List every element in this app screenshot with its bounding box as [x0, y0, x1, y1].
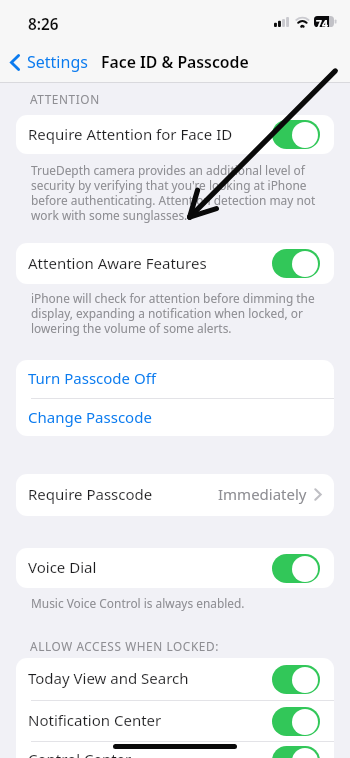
button[interactable]: Voice Dial	[272, 554, 320, 583]
button[interactable]: Turn Passcode Off	[16, 360, 334, 398]
staticText: Require Passcode	[28, 484, 153, 504]
button[interactable]: Control Center	[272, 746, 320, 758]
button[interactable]: Today View and Search	[16, 658, 334, 700]
button[interactable]: Attention Aware Features	[16, 243, 334, 284]
staticText: ALLOW ACCESS WHEN LOCKED:	[30, 638, 219, 654]
button[interactable]: Notification Center	[16, 701, 334, 741]
staticText: Today View and Search	[28, 668, 189, 688]
staticText: Face ID & Passcode	[101, 51, 249, 73]
button[interactable]: Notification Center	[272, 707, 320, 736]
button[interactable]: Settings	[0, 47, 98, 77]
staticText: Voice Dial	[28, 557, 97, 577]
staticText: Immediately	[218, 484, 307, 504]
button[interactable]: Attention Aware Features	[272, 249, 320, 278]
button[interactable]: Require Passcode	[16, 474, 334, 516]
staticText: Change Passcode	[28, 407, 152, 427]
button[interactable]: Today View and Search	[272, 665, 320, 694]
staticText: ATTENTION	[30, 91, 100, 107]
button[interactable]: Voice Dial	[16, 548, 334, 588]
button[interactable]: Require Attention for Face ID	[16, 115, 334, 154]
staticText: Control Center	[28, 749, 132, 758]
staticText: 74	[316, 17, 328, 31]
staticText: Settings	[27, 51, 88, 73]
staticText: Turn Passcode Off	[28, 368, 156, 388]
staticText: 8:26	[28, 14, 59, 35]
button[interactable]: Change Passcode	[16, 399, 334, 436]
staticText: iPhone will check for attention before d…	[31, 290, 323, 336]
staticText: Attention Aware Features	[28, 253, 207, 273]
button[interactable]: Control Center	[16, 742, 334, 758]
button[interactable]: Require Attention for Face ID	[272, 120, 320, 149]
staticText: Notification Center	[28, 710, 162, 730]
staticText: Require Attention for Face ID	[28, 124, 233, 144]
staticText: TrueDepth camera provides an additional …	[31, 162, 323, 223]
staticText: Music Voice Control is always enabled.	[31, 595, 323, 611]
